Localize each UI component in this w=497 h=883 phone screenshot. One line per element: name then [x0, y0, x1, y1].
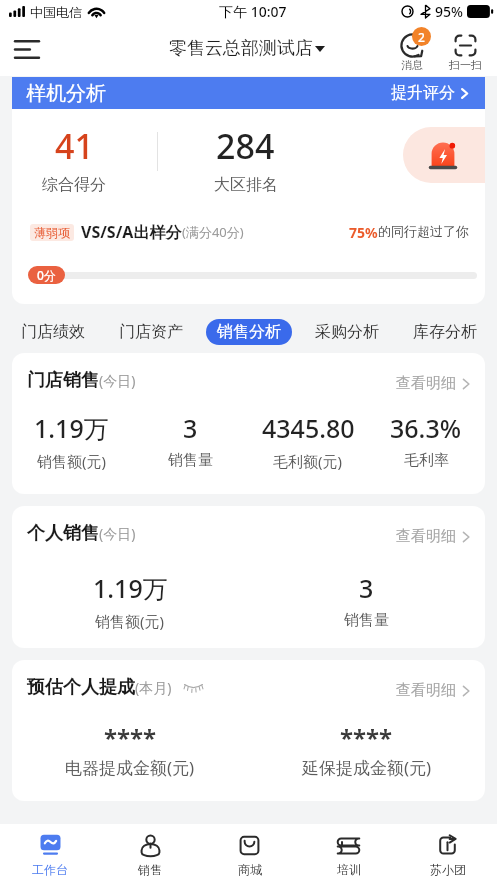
staticText: 电器提成金额(元): [65, 756, 195, 779]
staticText: 库存分析: [413, 322, 477, 342]
button[interactable]: 库存分析: [402, 319, 488, 345]
staticText: (今日): [99, 524, 136, 543]
staticText: 销售量: [344, 611, 389, 630]
staticText: 工作台: [32, 862, 68, 877]
button[interactable]: 零售云总部测试店: [169, 37, 325, 60]
staticText: 41: [55, 123, 94, 169]
button[interactable]: 销售分析: [206, 319, 292, 345]
staticText: 大区排名: [214, 175, 278, 195]
staticText: 查看明细: [396, 527, 456, 546]
staticText: 苏小团: [430, 862, 466, 877]
staticText: 销售额(元): [37, 451, 107, 471]
staticText: 查看明细: [396, 681, 456, 700]
staticText: 扫一扫: [449, 58, 482, 72]
staticText: 下午 10:07: [219, 2, 287, 21]
staticText: 3: [183, 411, 198, 445]
staticText: 2: [418, 29, 425, 45]
staticText: 中国电信: [30, 4, 82, 20]
staticText: 95%: [435, 2, 463, 21]
staticText: 提升评分: [391, 83, 455, 103]
button[interactable]: 查看明细: [396, 681, 475, 700]
staticText: (满分40分): [182, 223, 244, 241]
staticText: ****: [104, 721, 157, 754]
staticText: 284: [216, 123, 275, 169]
staticText: 个人销售: [27, 522, 99, 545]
staticText: 消息: [401, 58, 423, 72]
staticText: 零售云总部测试店: [169, 37, 313, 60]
button[interactable]: 销售: [100, 831, 200, 876]
button[interactable]: 样机分析: [12, 77, 485, 109]
staticText: ****: [340, 721, 393, 754]
staticText: (今日): [99, 371, 136, 390]
staticText: 门店销售: [27, 369, 99, 392]
staticText: 75%: [349, 223, 378, 242]
button[interactable]: 扫一扫: [439, 33, 491, 72]
staticText: 查看明细: [396, 374, 456, 393]
staticText: VS/S/A出样分: [81, 221, 182, 243]
staticText: 样机分析: [26, 81, 106, 106]
button[interactable]: 门店绩效: [9, 319, 96, 345]
staticText: 培训: [337, 862, 361, 877]
staticText: 延保提成金额(元): [302, 756, 432, 779]
staticText: 销售额(元): [95, 611, 165, 631]
button[interactable]: 苏小团: [398, 831, 497, 876]
staticText: 的同行超过了你: [378, 223, 469, 239]
staticText: 销售: [138, 862, 162, 877]
staticText: 1.19万: [34, 411, 109, 445]
staticText: 毛利率: [404, 451, 449, 470]
staticText: 门店绩效: [21, 322, 85, 342]
staticText: 薄弱项: [34, 225, 70, 240]
staticText: 销售量: [168, 451, 213, 470]
staticText: 36.3%: [390, 411, 462, 445]
button[interactable]: 培训: [299, 831, 398, 876]
staticText: 1.19万: [93, 571, 168, 605]
staticText: 4345.80: [262, 411, 355, 445]
staticText: 门店资产: [119, 322, 183, 342]
staticText: 综合得分: [42, 175, 106, 195]
staticText: 毛利额(元): [273, 451, 343, 471]
staticText: 采购分析: [315, 322, 379, 342]
button[interactable]: 2: [385, 33, 439, 72]
staticText: 商城: [238, 862, 262, 877]
staticText: 0分: [37, 267, 56, 283]
staticText: 3: [359, 571, 374, 605]
button[interactable]: 采购分析: [304, 319, 390, 345]
button[interactable]: 商城: [200, 831, 299, 876]
staticText: 销售分析: [217, 322, 281, 342]
other: Hide amount: [184, 683, 203, 692]
button[interactable]: 查看明细: [396, 527, 475, 546]
button[interactable]: 工作台: [0, 831, 100, 876]
button[interactable]: 门店资产: [108, 319, 194, 345]
button[interactable]: 查看明细: [396, 374, 475, 393]
staticText: 预估个人提成: [27, 676, 135, 699]
staticText: (本月): [135, 678, 172, 697]
button[interactable]: Menu: [5, 27, 49, 71]
